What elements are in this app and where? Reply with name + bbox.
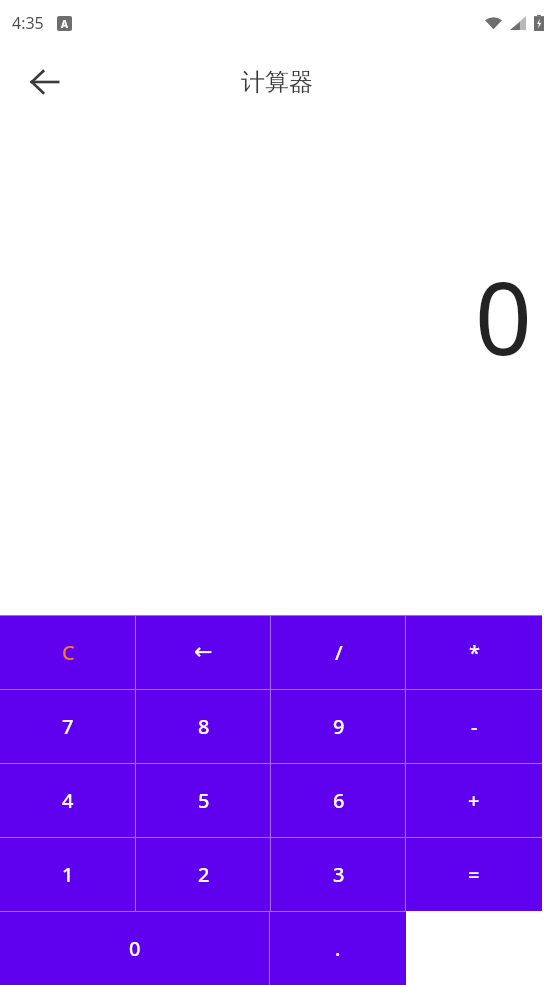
- button[interactable]: /: [271, 615, 406, 689]
- button[interactable]: *: [406, 615, 542, 689]
- staticText: 8: [198, 713, 210, 740]
- staticText: 4: [62, 787, 74, 814]
- button[interactable]: 8: [136, 689, 271, 763]
- button[interactable]: 4: [0, 763, 136, 837]
- button[interactable]: C: [0, 615, 136, 689]
- button[interactable]: 7: [0, 689, 136, 763]
- staticText: *: [469, 639, 480, 666]
- button[interactable]: 0: [0, 911, 270, 985]
- staticText: 1: [62, 861, 74, 888]
- staticText: 5: [198, 787, 210, 814]
- staticText: 7: [62, 713, 74, 740]
- staticText: 2: [198, 861, 210, 888]
- button[interactable]: -: [406, 689, 542, 763]
- staticText: 3: [333, 861, 345, 888]
- staticText: =: [468, 861, 480, 888]
- staticText: /: [335, 639, 343, 666]
- staticText: ←: [194, 639, 213, 665]
- button[interactable]: 9: [271, 689, 406, 763]
- button[interactable]: 6: [271, 763, 406, 837]
- button[interactable]: 5: [136, 763, 271, 837]
- button[interactable]: 2: [136, 837, 271, 911]
- button[interactable]: .: [270, 911, 406, 985]
- staticText: 4:35: [12, 12, 44, 34]
- button[interactable]: +: [406, 763, 542, 837]
- staticText: -: [471, 713, 478, 740]
- staticText: 0: [0, 248, 532, 384]
- button[interactable]: ←: [136, 615, 271, 689]
- button[interactable]: 1: [0, 837, 136, 911]
- staticText: 6: [333, 787, 345, 814]
- staticText: 计算器: [241, 67, 313, 97]
- button[interactable]: =: [406, 837, 542, 911]
- staticText: .: [335, 935, 341, 962]
- staticText: C: [62, 639, 75, 666]
- staticText: 9: [333, 713, 345, 740]
- staticText: 0: [129, 935, 141, 962]
- button[interactable]: 3: [271, 837, 406, 911]
- button[interactable]: Back: [18, 55, 72, 109]
- staticText: A: [61, 17, 68, 31]
- staticText: +: [468, 787, 480, 814]
